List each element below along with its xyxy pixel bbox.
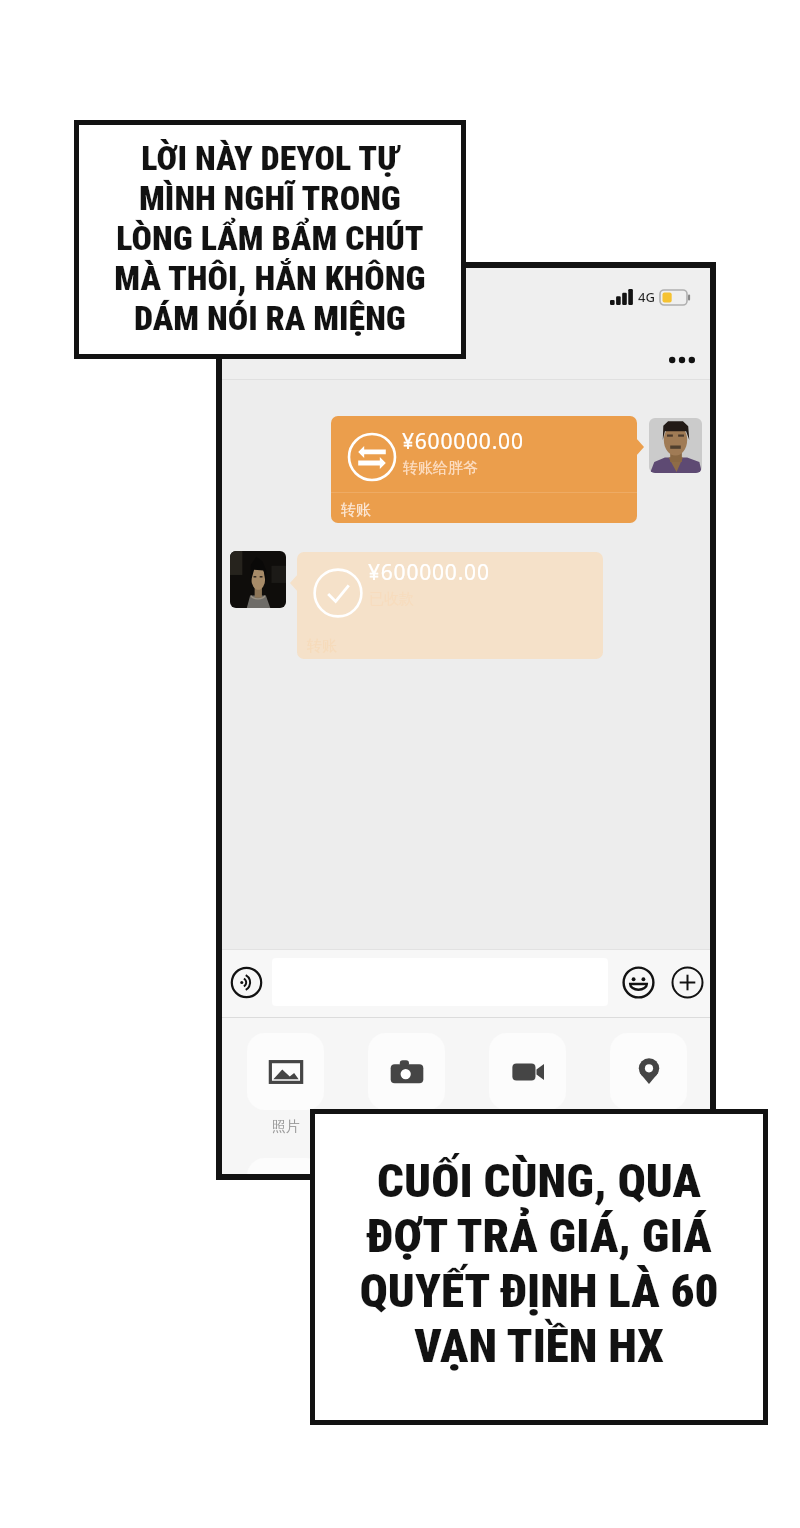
staticText: 照片 (272, 1118, 300, 1136)
staticText: DÁM NÓI RA MIỆNG (134, 298, 406, 338)
staticText: ¥600000.00 (368, 558, 490, 587)
staticText: 转账 (307, 637, 337, 656)
staticText: ¥600000.00 (402, 427, 524, 456)
staticText: MÌNH NGHĨ TRONG (139, 178, 401, 218)
staticText: MÀ THÔI, HẮN KHÔNG (114, 258, 426, 298)
staticText: LỜI NÀY DEYOL TỰ (141, 138, 399, 178)
button[interactable]: Voice input (226, 962, 266, 1002)
button[interactable]: 位置 (610, 1033, 687, 1136)
button[interactable]: More (667, 962, 707, 1002)
staticText: 4G (638, 288, 655, 306)
button[interactable]: More options (662, 340, 702, 380)
button[interactable]: 照片 (247, 1033, 324, 1136)
button[interactable]: ¥600000.00 (331, 416, 637, 523)
button[interactable]: 拍摄 (368, 1033, 445, 1136)
button[interactable]: 视频通话 (489, 1033, 566, 1136)
button[interactable] (368, 1158, 445, 1174)
staticText: CUỐI CÙNG, QUA (377, 1153, 701, 1208)
button[interactable] (610, 1158, 687, 1174)
staticText: 已收款 (369, 590, 414, 609)
staticText: ĐỢT TRẢ GIÁ, GIÁ (366, 1208, 712, 1263)
button[interactable]: Emoji (618, 962, 658, 1002)
staticText: 转账给胖爷 (403, 459, 478, 478)
staticText: VẠN TIỀN HX (414, 1318, 664, 1373)
button[interactable] (247, 1158, 324, 1174)
staticText: 转账 (341, 501, 371, 520)
button[interactable]: ¥600000.00 (297, 552, 603, 659)
button[interactable] (489, 1158, 566, 1174)
staticText: LÒNG LẨM BẨM CHÚT (116, 218, 424, 258)
staticText: QUYẾT ĐỊNH LÀ 60 (359, 1263, 719, 1318)
